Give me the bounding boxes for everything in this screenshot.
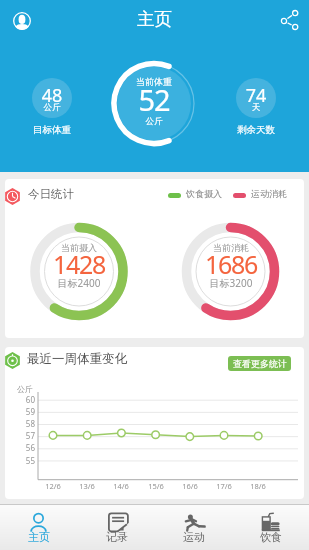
staticText: 当前摄入 <box>39 242 119 253</box>
staticText: 59 <box>15 406 35 417</box>
staticText: 最近一周体重变化 <box>27 351 157 367</box>
staticText: 16/6 <box>177 481 203 491</box>
staticText: 1686 <box>191 247 271 281</box>
staticText: 55 <box>15 455 35 466</box>
button[interactable] <box>279 10 299 30</box>
staticText: 57 <box>15 430 35 441</box>
staticText: 13/6 <box>74 481 100 491</box>
staticText: 1428 <box>39 247 119 281</box>
button[interactable]: 记录 <box>78 504 155 550</box>
staticText: 15/6 <box>143 481 169 491</box>
staticText: 当前体重 <box>114 76 194 87</box>
staticText: 饮食 <box>260 530 282 544</box>
staticText: 14/6 <box>108 481 134 491</box>
staticText: 目标体重 <box>12 124 92 136</box>
button[interactable]: 运动 <box>155 504 232 550</box>
staticText: 今日统计 <box>28 187 98 201</box>
staticText: 当前消耗 <box>191 242 271 253</box>
staticText: 剩余天数 <box>216 124 296 136</box>
staticText: 60 <box>15 394 35 405</box>
staticText: 查看更多统计 <box>233 358 287 369</box>
staticText: 饮食摄入 <box>186 188 228 199</box>
staticText: 天 <box>216 102 296 113</box>
button[interactable]: 饮食 <box>232 504 309 550</box>
staticText: 52 <box>114 80 194 119</box>
staticText: 公斤 <box>12 102 92 113</box>
staticText: 运动 <box>183 530 205 544</box>
staticText: 公斤 <box>13 384 33 394</box>
staticText: 74 <box>216 83 296 108</box>
staticText: 12/6 <box>40 481 66 491</box>
staticText: 56 <box>15 442 35 453</box>
staticText: 运动消耗 <box>251 188 293 199</box>
button[interactable] <box>12 11 32 31</box>
staticText: 公斤 <box>114 116 194 127</box>
staticText: 17/6 <box>211 481 237 491</box>
staticText: 主页 <box>0 8 309 30</box>
staticText: 记录 <box>106 530 128 544</box>
staticText: 58 <box>15 418 35 429</box>
staticText: 目标2400 <box>39 276 119 290</box>
staticText: 48 <box>12 83 92 108</box>
staticText: 18/6 <box>245 481 271 491</box>
button[interactable]: 查看更多统计 <box>228 356 291 371</box>
staticText: 目标3200 <box>191 276 271 290</box>
staticText: 主页 <box>28 530 50 544</box>
button[interactable]: 主页 <box>0 504 78 550</box>
